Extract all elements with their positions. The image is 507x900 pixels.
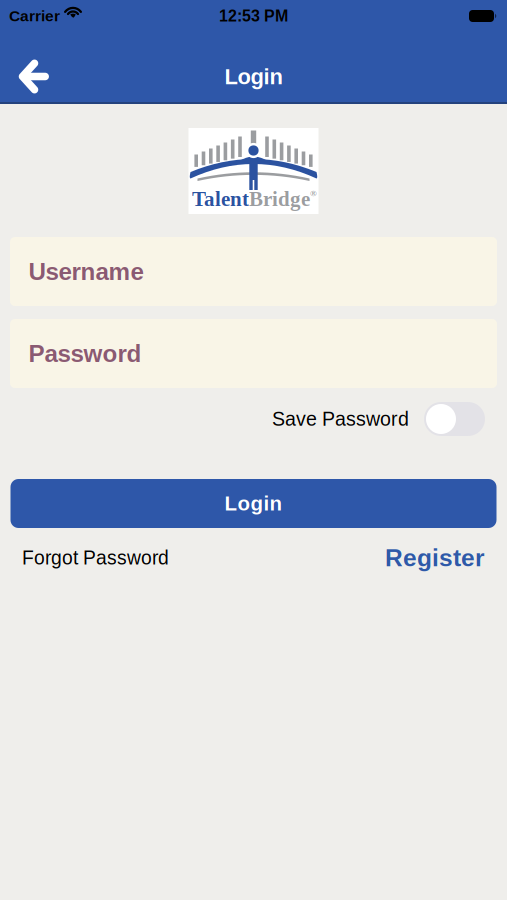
button[interactable]: Back [0, 40, 49, 93]
staticText: 12:53 PM [219, 7, 288, 25]
staticText: Login [224, 64, 282, 89]
staticText: Talent [192, 187, 249, 211]
staticText: Forgot Password [22, 547, 169, 568]
button[interactable]: Password [10, 319, 497, 388]
staticText: Username [28, 258, 143, 285]
button[interactable]: Forgot Password [22, 547, 169, 568]
staticText: Login [224, 492, 282, 515]
staticText: Password [28, 340, 141, 367]
staticText: Register [385, 544, 485, 571]
staticText: Save Password [272, 408, 409, 430]
button[interactable]: Login [10, 479, 496, 528]
staticText: ® [310, 188, 317, 198]
button[interactable]: Register [385, 544, 485, 571]
button[interactable]: Save Password [424, 402, 485, 436]
staticText: Bridge [249, 187, 310, 211]
button[interactable]: Username [10, 237, 497, 306]
staticText: Carrier [9, 7, 60, 25]
